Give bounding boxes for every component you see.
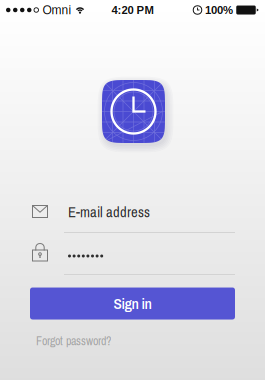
button[interactable]: Sign in (30, 287, 235, 319)
staticText: Forgot password? (36, 333, 111, 349)
staticText: Sign in (113, 293, 151, 314)
button[interactable]: Forgot password? (36, 333, 156, 349)
staticText: 4:20 PM (111, 4, 153, 16)
staticText: Omni (42, 3, 71, 17)
staticText: 100% (205, 4, 233, 16)
staticText: E-mail address (68, 202, 150, 222)
